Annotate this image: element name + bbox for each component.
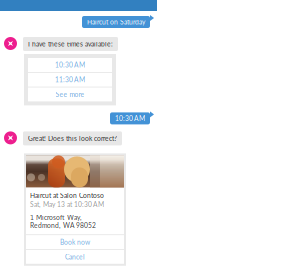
staticText: Great! Does this look correct? — [28, 134, 117, 142]
staticText: See more — [55, 90, 84, 98]
button[interactable]: See more — [28, 87, 112, 101]
staticText: 1 Microsoft Way, — [30, 213, 82, 221]
button[interactable]: Book now — [26, 234, 124, 249]
staticText: Cancel — [65, 253, 85, 261]
button[interactable]: 11:30 AM — [28, 72, 112, 87]
staticText: Haircut on Saturday — [87, 18, 145, 26]
staticText: Haircut at Salon Contoso — [30, 191, 104, 199]
staticText: 10:30 AM — [115, 114, 145, 122]
staticText: 10:30 AM — [55, 61, 85, 69]
staticText: Redmond, WA 98052 — [30, 221, 96, 229]
button[interactable]: 10:30 AM — [28, 58, 112, 72]
staticText: I have these times available: — [28, 40, 113, 48]
button[interactable]: Cancel — [26, 249, 124, 264]
staticText: Sat, May 13 at 10:30 AM — [30, 200, 104, 208]
staticText: 11:30 AM — [55, 76, 85, 84]
staticText: Book now — [60, 238, 90, 246]
